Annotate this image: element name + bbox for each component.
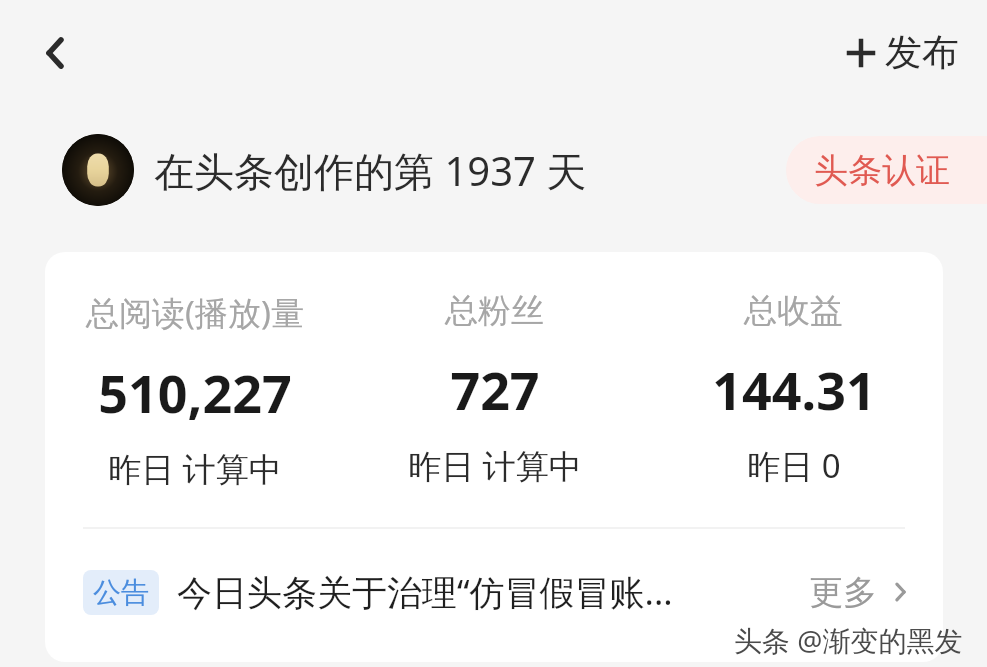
staticText: 510,227 — [98, 357, 292, 428]
staticText: 发布 — [885, 29, 959, 76]
button[interactable]: 头条认证 — [786, 136, 987, 204]
staticText: 总阅读(播放)量 — [86, 290, 304, 335]
button[interactable]: Back — [18, 14, 96, 92]
button[interactable]: 总收益 — [644, 290, 943, 488]
staticText: 昨日 计算中 — [108, 446, 282, 491]
staticText: 头条 @渐变的黑发 — [734, 621, 963, 659]
staticText: 727 — [450, 354, 540, 425]
button[interactable]: 总粉丝 — [345, 290, 644, 488]
staticText: 头条认证 — [814, 149, 950, 192]
button[interactable]: 公告 — [45, 557, 943, 627]
button[interactable]: 总阅读(播放)量 — [45, 290, 345, 491]
button[interactable]: 发布 — [840, 21, 965, 84]
staticText: 公告 — [93, 575, 149, 610]
staticText: 更多 — [809, 571, 877, 614]
staticText: 今日头条关于治理“仿冒假冒账... — [177, 568, 673, 616]
staticText: 昨日 0 — [747, 443, 841, 488]
staticText: 总收益 — [744, 290, 843, 332]
staticText: 昨日 计算中 — [408, 443, 582, 488]
staticText: 144.31 — [712, 354, 876, 425]
staticText: 总粉丝 — [445, 290, 544, 332]
staticText: 在头条创作的第 1937 天 — [154, 143, 587, 198]
button[interactable]: 在头条创作的第 1937 天 — [62, 134, 587, 206]
